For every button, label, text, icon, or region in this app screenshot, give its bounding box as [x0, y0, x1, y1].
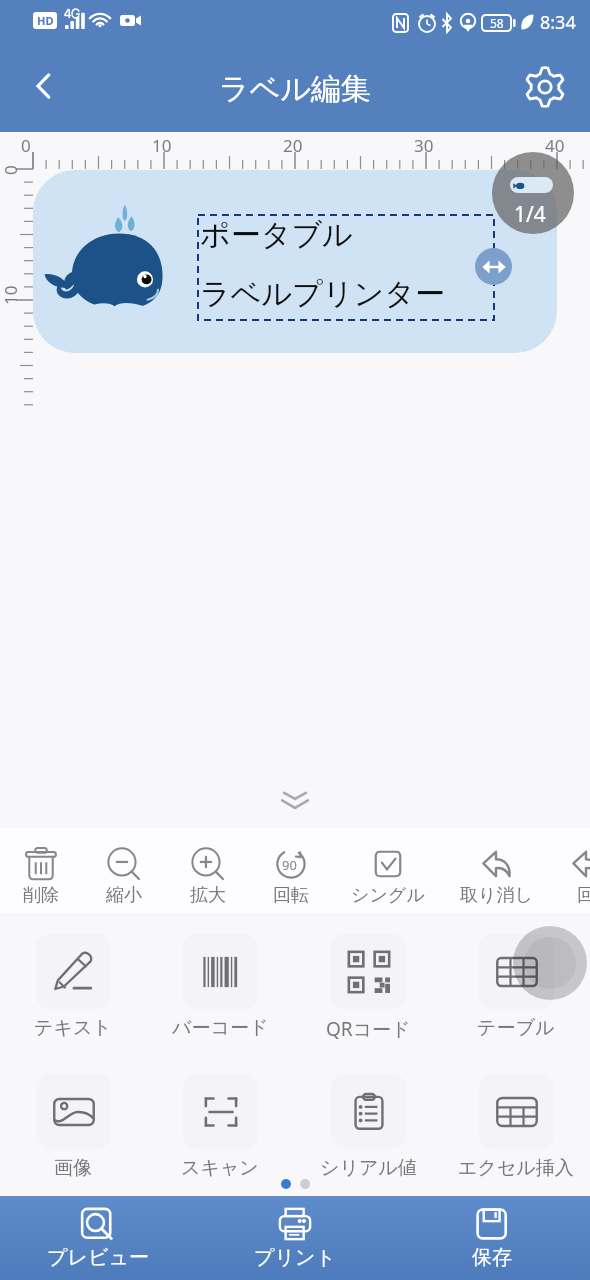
button[interactable]: 削除 — [0, 847, 85, 907]
staticText: 削除 — [23, 884, 59, 907]
button[interactable]: 画像 — [3, 1074, 143, 1180]
button[interactable]: Resize — [475, 248, 512, 285]
button[interactable]: Label preview 1 of 4 — [492, 152, 574, 234]
staticText: ラベルプリンター — [200, 275, 445, 313]
staticText: プリント — [254, 1245, 336, 1270]
staticText: 0 — [21, 134, 31, 157]
staticText: 10 — [0, 285, 22, 305]
staticText: 0 — [0, 165, 22, 175]
button[interactable]: Back — [14, 56, 74, 116]
staticText: ラベル編集 — [219, 70, 372, 108]
button[interactable]: エクセル挿入 — [446, 1074, 586, 1180]
staticText: 回転 — [273, 884, 309, 907]
button[interactable]: プリント — [196, 1206, 393, 1270]
staticText: スキャン — [181, 1156, 259, 1180]
staticText: シリアル値 — [320, 1156, 417, 1180]
staticText: 拡大 — [190, 884, 226, 907]
staticText: シングル — [351, 884, 425, 907]
staticText: 取り消し — [460, 884, 533, 907]
staticText: エクセル挿入 — [458, 1156, 574, 1180]
button[interactable]: テーブル — [446, 934, 586, 1040]
staticText: 40 — [545, 134, 565, 157]
staticText: 保存 — [472, 1245, 512, 1270]
staticText: 20 — [283, 134, 303, 157]
staticText: 縮小 — [106, 884, 142, 907]
button[interactable]: テキスト — [3, 934, 143, 1040]
button[interactable]: Settings — [514, 56, 576, 118]
staticText: テキスト — [34, 1016, 112, 1040]
button[interactable]: Collapse panel — [265, 782, 325, 818]
staticText: 10 — [152, 134, 172, 157]
button[interactable]: 縮小 — [80, 847, 168, 907]
staticText: 8:34 — [540, 10, 576, 35]
button[interactable]: 90 — [247, 847, 335, 907]
button[interactable]: 拡大 — [164, 847, 252, 907]
staticText: 画像 — [54, 1156, 92, 1180]
staticText: 58 — [490, 15, 504, 31]
button[interactable]: 取り消し — [452, 847, 540, 907]
staticText: テーブル — [477, 1016, 555, 1040]
button[interactable]: プレビュー — [0, 1206, 196, 1270]
button[interactable]: シングル — [344, 847, 432, 907]
staticText: 90 — [282, 856, 297, 874]
staticText: 1/4 — [514, 200, 546, 229]
button[interactable]: 回 — [542, 847, 590, 907]
staticText: バーコード — [172, 1016, 269, 1040]
staticText: ポータブル — [200, 216, 353, 254]
button[interactable]: スキャン — [150, 1074, 290, 1180]
staticText: プレビュー — [47, 1245, 149, 1270]
staticText: QRコード — [326, 1016, 411, 1042]
staticText: 回 — [577, 884, 590, 907]
button[interactable]: QRコード — [298, 934, 438, 1042]
button[interactable]: シリアル値 — [298, 1074, 438, 1180]
staticText: 30 — [414, 134, 434, 157]
button[interactable]: 保存 — [393, 1206, 590, 1270]
staticText: HD — [37, 13, 54, 28]
button[interactable]: バーコード — [150, 934, 290, 1040]
